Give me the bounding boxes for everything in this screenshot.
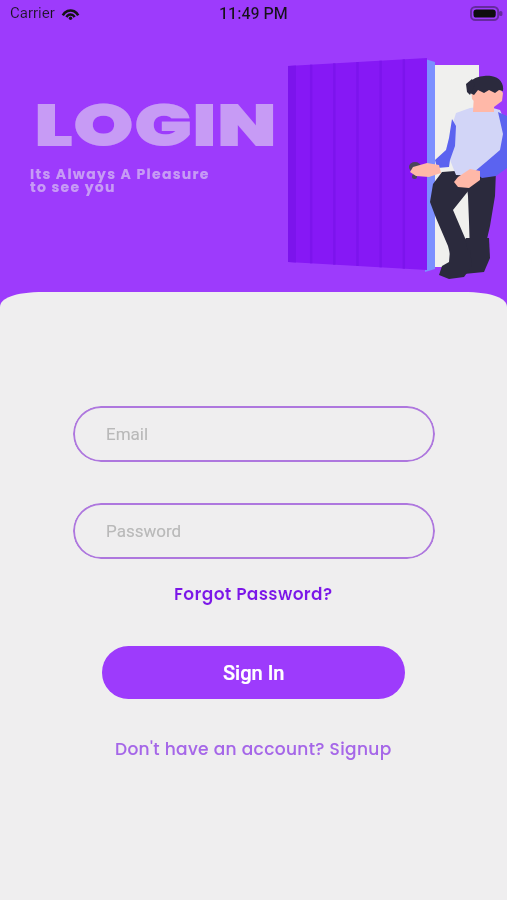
staticText: Carrier — [10, 4, 55, 22]
button[interactable]: Don't have an account? Signup — [0, 737, 507, 761]
staticText: Sign In — [223, 661, 285, 684]
button[interactable]: Forgot Password? — [0, 582, 507, 606]
staticText: 11:49 PM — [219, 4, 288, 23]
staticText: Email — [106, 424, 149, 444]
other: Battery full — [471, 7, 503, 20]
button[interactable]: Email — [73, 406, 435, 462]
staticText: Don't have an account? Signup — [115, 737, 392, 761]
staticText: Forgot Password? — [174, 582, 333, 606]
button[interactable]: Sign In — [102, 646, 405, 699]
staticText: Its Always A Pleasure to see you — [30, 164, 210, 197]
button[interactable]: Password — [73, 503, 435, 559]
staticText: LOGIN — [34, 83, 277, 167]
staticText: Password — [106, 521, 182, 541]
